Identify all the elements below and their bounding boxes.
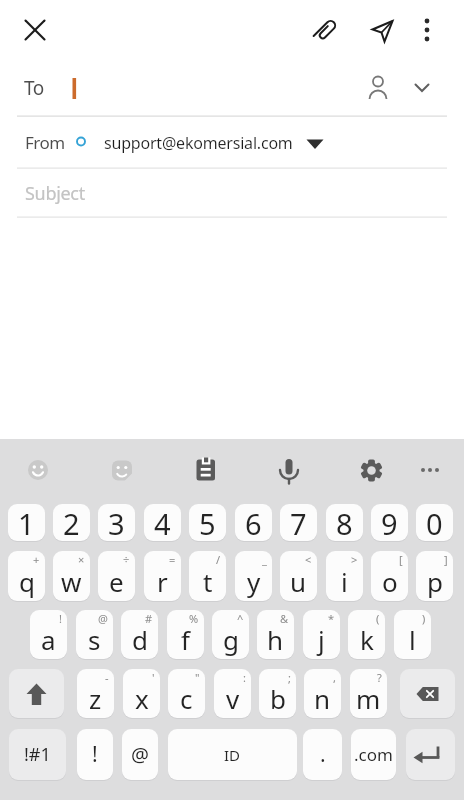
button[interactable]: 8 [326,504,363,541]
button[interactable]: e [98,551,135,601]
staticText: _ [262,552,267,567]
button[interactable]: o [371,551,408,601]
button[interactable]: ID [168,729,297,780]
button[interactable]: . [303,729,342,780]
button[interactable] [13,8,57,52]
staticText: g [223,622,239,657]
button[interactable]: @ [122,729,158,780]
button[interactable]: b [259,669,296,718]
button[interactable]: .com [351,729,396,780]
staticText: Subject [25,181,85,206]
staticText: 3 [108,504,125,541]
button[interactable]: d [121,610,158,659]
staticText: v [226,681,240,716]
button[interactable]: 5 [189,504,226,541]
button[interactable]: t [189,551,226,601]
staticText: ) [422,611,426,626]
staticText: # [145,611,153,626]
button[interactable]: l [394,610,431,659]
button[interactable]: 9 [371,504,408,541]
button[interactable]: 6 [235,504,272,541]
button[interactable]: k [348,610,385,659]
button[interactable] [184,446,228,490]
button[interactable]: j [303,610,340,659]
button[interactable]: s [76,610,113,659]
button[interactable]: g [212,610,249,659]
staticText: x [135,681,149,716]
staticText: p [427,564,443,599]
button[interactable] [100,446,144,490]
button[interactable] [400,65,444,109]
button[interactable]: n [304,669,341,718]
button[interactable]: 1 [8,504,45,541]
button[interactable]: h [257,610,294,659]
staticText: ( [376,611,380,626]
button[interactable]: Subject [0,169,464,217]
staticText: c [180,681,193,716]
staticText: !#1 [24,742,51,767]
button[interactable]: x [123,669,160,718]
button[interactable] [360,8,404,52]
button[interactable] [267,446,311,490]
staticText: ! [92,740,98,769]
staticText: ; [288,670,291,685]
button[interactable] [408,446,452,490]
button[interactable]: z [77,669,114,718]
button[interactable] [16,446,60,490]
button[interactable]: p [416,551,453,601]
staticText: 9 [381,504,398,541]
staticText: ID [224,745,241,765]
staticText: m [356,681,381,716]
button[interactable] [349,446,393,490]
button[interactable]: q [8,551,45,601]
staticText: [ [399,552,403,567]
button[interactable] [406,729,455,780]
staticText: × [78,552,85,567]
button[interactable]: 7 [280,504,317,541]
button[interactable] [9,669,64,718]
staticText: ! [59,611,62,626]
staticText: ' [152,670,155,685]
staticText: i [341,564,348,599]
button[interactable]: v [214,669,251,718]
staticText: 4 [154,504,171,541]
button[interactable] [405,8,449,52]
button[interactable]: 3 [98,504,135,541]
staticText: ÷ [123,552,130,567]
button[interactable]: r [144,551,181,601]
button[interactable]: c [168,669,205,718]
button[interactable]: i [326,551,363,601]
staticText: u [290,564,307,599]
button[interactable]: y [235,551,272,601]
staticText: + [33,552,40,567]
button[interactable] [356,65,400,109]
staticText: " [195,670,200,685]
button[interactable]: f [167,610,204,659]
button[interactable]: u [280,551,317,601]
button[interactable] [304,8,348,52]
button[interactable]: 0 [416,504,453,541]
button[interactable]: ! [77,729,113,780]
staticText: k [360,622,374,657]
button[interactable]: 2 [53,504,90,541]
staticText: 2 [63,504,80,541]
button[interactable] [400,669,455,718]
staticText: , [333,670,336,685]
button[interactable]: From [0,117,464,168]
staticText: * [328,611,335,626]
button[interactable]: m [350,669,387,718]
button[interactable]: a [30,610,67,659]
staticText: s [88,622,101,657]
staticText: support@ekomersial.com [104,132,293,154]
button[interactable]: !#1 [9,729,66,780]
button[interactable]: w [53,551,90,601]
staticText: = [169,552,176,567]
staticText: 6 [245,504,262,541]
staticText: < [305,552,312,567]
staticText: . [320,740,326,769]
button[interactable]: To [0,60,464,116]
button[interactable]: 4 [144,504,181,541]
staticText: & [280,611,289,626]
staticText: y [247,564,261,599]
staticText: @ [131,741,149,768]
